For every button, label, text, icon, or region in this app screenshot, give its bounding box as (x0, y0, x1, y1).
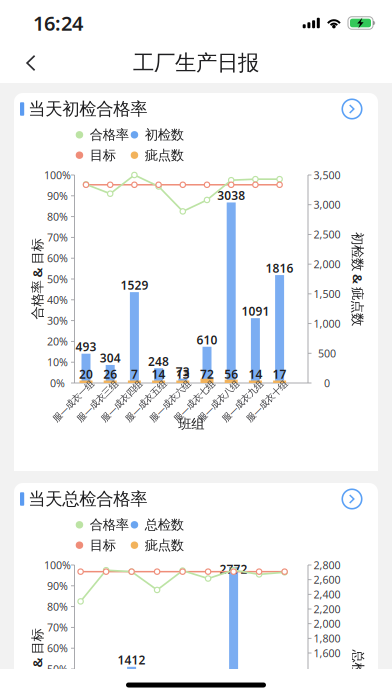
staticText: 16:24 (33, 10, 83, 36)
staticText: 服—成衣五组 (119, 395, 173, 407)
staticText: 7 (131, 366, 138, 382)
staticText: 26 (103, 366, 117, 382)
staticText: 总检数 (338, 661, 377, 677)
staticText: 500 (318, 346, 336, 360)
staticText: 1816 (266, 260, 294, 276)
staticText: 疵点数 (145, 537, 184, 553)
staticText: 100% (44, 168, 71, 182)
staticText: 服—成衣八组 (191, 395, 245, 407)
staticText: 服—成衣三组 (70, 395, 124, 407)
staticText: 0 (324, 376, 330, 390)
staticText: 60% (47, 251, 68, 265)
staticText: 初检数 & 疵点数 (311, 270, 392, 288)
staticText: 2,200 (313, 602, 340, 616)
staticText: 70% (47, 230, 68, 244)
staticText: 总检数 (145, 517, 184, 533)
staticText: 工厂生产日报 (133, 50, 259, 76)
staticText: 90% (47, 579, 68, 593)
staticText: 1,800 (313, 631, 340, 645)
staticText: 2772 (220, 561, 248, 577)
staticText: 服—成衣十组 (240, 395, 294, 407)
staticText: 30% (47, 313, 68, 328)
staticText: 3038 (217, 187, 245, 203)
staticText: 610 (196, 332, 217, 348)
staticText: 服—成衣九组 (215, 395, 269, 407)
staticText: 248 (148, 353, 169, 369)
staticText: 目标 (90, 537, 116, 553)
staticText: 100% (44, 558, 71, 572)
staticText: 服—成衣一组 (46, 395, 100, 407)
staticText: 73 (176, 364, 190, 380)
staticText: 1091 (241, 303, 269, 319)
staticText: 304 (100, 350, 121, 366)
button[interactable]: 查看详情 (337, 94, 367, 124)
staticText: 60% (47, 641, 68, 655)
staticText: 1,600 (313, 646, 340, 660)
staticText: 1,500 (313, 287, 340, 301)
staticText: 合格率 & 目标 (0, 660, 77, 678)
staticText: 72 (200, 366, 214, 382)
staticText: 3,000 (313, 198, 340, 212)
staticText: 40% (47, 293, 68, 307)
staticText: 2,500 (313, 227, 340, 241)
staticText: 493 (75, 339, 96, 355)
staticText: 1529 (120, 277, 148, 293)
staticText: 50% (47, 662, 68, 676)
staticText: 13 (176, 366, 190, 382)
staticText: 10% (47, 355, 68, 369)
staticText: 服—成衣六组 (143, 395, 197, 407)
staticText: 服—成衣七组 (167, 395, 221, 407)
staticText: 56 (224, 366, 238, 382)
staticText: 80% (47, 599, 68, 614)
staticText: 50% (47, 272, 68, 286)
staticText: 0% (50, 376, 65, 390)
staticText: 2,600 (313, 573, 340, 587)
staticText: 2,000 (313, 617, 340, 631)
staticText: 90% (47, 189, 68, 203)
staticText: 14 (152, 366, 166, 382)
staticText: 3,500 (313, 168, 340, 182)
staticText: 2,400 (313, 587, 340, 601)
staticText: 14 (248, 366, 262, 382)
staticText: 合格率 & 目标 (0, 270, 77, 288)
staticText: 1412 (118, 652, 146, 668)
staticText: 当天总检合格率 (28, 488, 147, 510)
staticText: 70% (47, 620, 68, 634)
staticText: 20 (79, 366, 93, 382)
staticText: 20% (47, 334, 68, 348)
staticText: 当天初检合格率 (28, 98, 147, 120)
staticText: 80% (47, 209, 68, 224)
staticText: 2,800 (313, 558, 340, 572)
staticText: 目标 (90, 147, 116, 163)
staticText: 2,000 (313, 257, 340, 271)
button[interactable]: 返回 (9, 43, 53, 82)
staticText: 合格率 (90, 517, 129, 533)
staticText: 合格率 (90, 127, 129, 143)
staticText: 17 (273, 366, 287, 382)
staticText: 疵点数 (145, 147, 184, 163)
staticText: 服—成衣四组 (94, 395, 148, 407)
button[interactable]: 查看详情 (337, 484, 367, 514)
staticText: 1,000 (313, 316, 340, 331)
staticText: 初检数 (145, 127, 184, 143)
staticText: 班组 (178, 416, 204, 432)
